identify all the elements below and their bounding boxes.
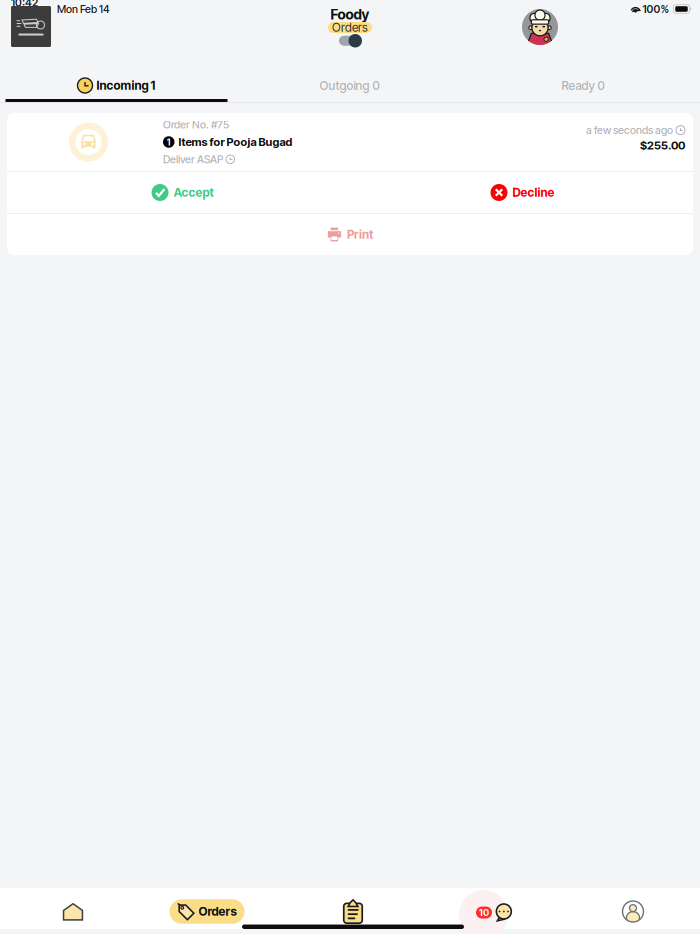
staticText: Order No. #75	[163, 118, 229, 131]
staticText: Items for Pooja Bugad	[178, 135, 292, 149]
staticText: Accept	[173, 185, 213, 200]
staticText: Deliver ASAP	[163, 153, 223, 166]
staticText: Ready 0	[561, 78, 604, 93]
staticText: $255.00	[640, 139, 685, 152]
staticText: 10	[479, 907, 489, 918]
button[interactable]: Incoming 1	[0, 57, 233, 102]
staticText: Foody	[330, 6, 369, 23]
button[interactable]: Home	[3, 891, 143, 932]
staticText: Orders	[198, 904, 236, 919]
staticText: Mon Feb 14	[57, 2, 110, 15]
button[interactable]: Profile	[563, 891, 700, 932]
button[interactable]: Print	[7, 214, 693, 255]
staticText: Incoming 1	[96, 78, 155, 93]
staticText: 1	[167, 136, 171, 148]
button[interactable]: Tasks	[283, 891, 423, 932]
button[interactable]: Ready 0	[466, 57, 700, 102]
staticText: Decline	[512, 185, 554, 200]
staticText: Print	[347, 227, 373, 242]
staticText: Outgoing 0	[319, 78, 379, 93]
staticText: 10:42 AM	[11, 0, 38, 22]
staticText: Orders	[332, 20, 368, 35]
button[interactable]: Outgoing 0	[233, 57, 466, 102]
button[interactable]: Accept	[7, 172, 350, 213]
button[interactable]: Orders	[137, 891, 277, 932]
staticText: a few seconds ago	[586, 124, 673, 137]
button[interactable]: Decline	[350, 172, 693, 213]
button[interactable]: Messages	[424, 892, 564, 933]
staticText: 100%	[640, 2, 669, 15]
